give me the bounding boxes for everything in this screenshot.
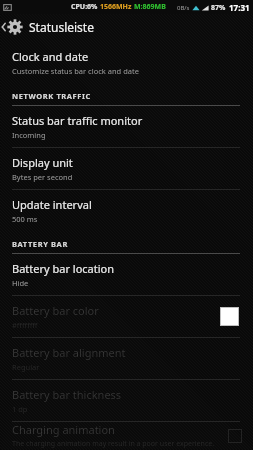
staticText: Charging animation xyxy=(12,422,115,437)
button[interactable]: Update interval xyxy=(0,190,253,231)
staticText: Regular xyxy=(12,362,40,372)
button[interactable]: Battery bar thickness xyxy=(0,380,253,421)
staticText: 1566MHz xyxy=(100,2,134,12)
button[interactable]: Battery bar alignment xyxy=(0,338,253,379)
staticText: M:869MB xyxy=(134,2,166,12)
staticText: 500 ms xyxy=(12,214,38,224)
staticText: Battery bar location xyxy=(12,261,115,276)
button[interactable]: Battery bar location xyxy=(0,254,253,295)
staticText: 1 dp xyxy=(12,404,28,414)
button[interactable]: Status bar traffic monitor xyxy=(0,106,253,147)
staticText: Incoming xyxy=(12,130,46,140)
staticText: Bytes per second xyxy=(12,172,73,182)
staticText: Update interval xyxy=(12,197,92,212)
staticText: NETWORK TRAFFIC xyxy=(12,91,91,101)
staticText: Hide xyxy=(12,278,29,288)
button[interactable]: Back xyxy=(0,14,253,40)
staticText: 87% xyxy=(211,3,226,13)
staticText: The charging animation may result in a p… xyxy=(12,439,228,450)
button[interactable]: Display unit xyxy=(0,148,253,189)
staticText: Battery bar alignment xyxy=(12,345,126,360)
staticText: Display unit xyxy=(12,155,73,170)
button[interactable]: Battery bar color xyxy=(0,296,253,337)
staticText: Clock and date xyxy=(12,49,89,64)
staticText: 0B/s xyxy=(177,4,190,12)
staticText: CPU:6% xyxy=(71,2,100,12)
staticText: Battery bar color xyxy=(12,303,99,318)
staticText: Battery bar thickness xyxy=(12,387,122,402)
staticText: Status bar traffic monitor xyxy=(12,113,143,128)
staticText: Statusleiste xyxy=(29,19,94,35)
staticText: Customize status bar clock and date xyxy=(12,66,139,76)
button[interactable]: Charging animation xyxy=(0,422,253,450)
staticText: 17:31 xyxy=(229,2,250,13)
button[interactable]: Clock and date xyxy=(0,42,253,83)
staticText: BATTERY BAR xyxy=(12,239,68,249)
staticText: #ffffffff xyxy=(12,320,38,330)
